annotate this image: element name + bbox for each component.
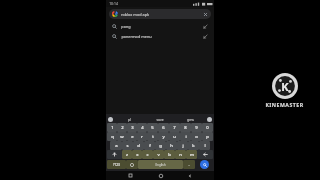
button[interactable]: d: [133, 141, 144, 150]
button[interactable]: r: [137, 132, 147, 141]
staticText: n: [179, 152, 182, 158]
staticText: .: [188, 162, 190, 167]
staticText: K: [281, 79, 289, 94]
staticText: r: [141, 134, 143, 140]
button[interactable]: g: [155, 141, 166, 150]
button[interactable]: h: [166, 141, 177, 150]
staticText: u: [173, 134, 176, 140]
staticText: w: [120, 134, 124, 140]
staticText: j: [182, 143, 184, 149]
staticText: KINEMASTER: [265, 101, 304, 108]
staticText: save: [156, 117, 164, 122]
staticText: i: [185, 134, 187, 140]
button[interactable]: save: [144, 115, 175, 123]
button[interactable]: Use suggestion pong: [203, 24, 208, 29]
button[interactable]: b: [164, 150, 175, 159]
button[interactable]: gms: [175, 115, 206, 123]
button[interactable]: Back: [184, 171, 195, 180]
button[interactable]: ponermod menu: [106, 31, 214, 41]
button[interactable]: Search: [200, 160, 209, 169]
button[interactable]: Use suggestion ponermod menu: [203, 34, 208, 39]
staticText: 5: [151, 125, 154, 131]
staticText: pl: [128, 117, 131, 122]
button[interactable]: p: [202, 132, 213, 141]
button[interactable]: v: [153, 150, 164, 159]
button[interactable]: f: [144, 141, 155, 150]
button[interactable]: Clear search: [203, 12, 208, 17]
staticText: p: [206, 134, 209, 140]
staticText: e: [131, 134, 134, 140]
staticText: s: [126, 143, 129, 149]
staticText: 6: [162, 125, 165, 131]
button[interactable]: ?123: [107, 160, 126, 169]
button[interactable]: pong: [106, 21, 214, 31]
button[interactable]: 5: [147, 123, 158, 132]
staticText: English: [155, 163, 166, 167]
button[interactable]: t: [147, 132, 158, 141]
button[interactable]: a: [110, 141, 122, 150]
button[interactable]: q: [107, 132, 117, 141]
button[interactable]: 3: [127, 123, 137, 132]
staticText: c: [146, 152, 149, 158]
button[interactable]: Google Lens: [108, 117, 113, 122]
button[interactable]: .: [183, 160, 195, 169]
staticText: 9: [195, 125, 198, 131]
button[interactable]: Voice input: [207, 117, 212, 122]
button[interactable]: c: [142, 150, 153, 159]
staticText: b: [168, 152, 171, 158]
staticText: pong: [121, 24, 131, 29]
button[interactable]: w: [117, 132, 127, 141]
button[interactable]: 9: [191, 123, 202, 132]
button[interactable]: Backspace: [197, 150, 213, 159]
button[interactable]: l: [199, 141, 210, 150]
button[interactable]: Shift: [107, 150, 122, 159]
staticText: 1: [111, 125, 114, 131]
staticText: d: [137, 143, 140, 149]
staticText: 3: [131, 125, 134, 131]
staticText: t: [152, 134, 154, 140]
button[interactable]: pl: [114, 115, 144, 123]
button[interactable]: k: [188, 141, 199, 150]
button[interactable]: 1: [107, 123, 117, 132]
button[interactable]: j: [177, 141, 188, 150]
staticText: 0: [206, 125, 209, 131]
staticText: m: [190, 152, 194, 158]
button[interactable]: z: [122, 150, 132, 159]
button[interactable]: 4: [137, 123, 147, 132]
button[interactable]: Space: [138, 160, 183, 169]
staticText: 7: [173, 125, 176, 131]
button[interactable]: u: [169, 132, 180, 141]
button[interactable]: s: [122, 141, 133, 150]
button[interactable]: e: [127, 132, 137, 141]
staticText: 2: [121, 125, 124, 131]
staticText: q: [111, 134, 114, 140]
button[interactable]: 2: [117, 123, 127, 132]
button[interactable]: o: [191, 132, 202, 141]
button[interactable]: Home: [155, 171, 166, 180]
button[interactable]: x: [132, 150, 142, 159]
button[interactable]: y: [158, 132, 169, 141]
staticText: k: [192, 143, 195, 149]
button[interactable]: Recent apps: [125, 171, 136, 180]
staticText: f: [149, 143, 151, 149]
button[interactable]: Emoji: [126, 160, 138, 169]
staticText: ?123: [113, 163, 120, 167]
button[interactable]: 0: [202, 123, 213, 132]
staticText: o: [195, 134, 198, 140]
staticText: x: [136, 152, 139, 158]
button[interactable]: i: [180, 132, 191, 141]
staticText: l: [204, 143, 206, 149]
button[interactable]: 7: [169, 123, 180, 132]
staticText: a: [115, 143, 118, 149]
staticText: g: [159, 143, 162, 149]
button[interactable]: m: [186, 150, 197, 159]
button[interactable]: 6: [158, 123, 169, 132]
button[interactable]: 8: [180, 123, 191, 132]
staticText: v: [157, 152, 160, 158]
staticText: y: [162, 134, 165, 140]
button[interactable]: roblox mod apk: [109, 9, 211, 19]
button[interactable]: n: [175, 150, 186, 159]
staticText: roblox mod apk: [121, 12, 149, 17]
staticText: gms: [187, 117, 194, 122]
staticText: 8: [184, 125, 187, 131]
